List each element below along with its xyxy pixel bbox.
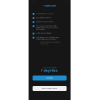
staticText: 9:41 [32,1,35,2]
staticText: New classes every week [36,21,54,23]
button[interactable]: Continue [33,75,67,80]
staticText: Continue [46,77,53,79]
staticText: PREMIUM [43,4,57,7]
staticText: Access to every course [36,13,54,14]
staticText: $6.99 USD per month [43,67,57,69]
button[interactable]: Restore purchase [33,86,67,91]
staticText: Personal coach feedback with detailed no… [36,25,59,30]
staticText: Auto-renews each month until you cancel [40,41,59,45]
staticText: 7 days free [41,69,58,72]
staticText: Certificates of completion [36,32,52,34]
staticText: Watch offline anywhere [36,17,52,19]
staticText: Cancel whenever you like, straight from … [36,36,59,40]
staticText: Restore purchase [42,88,57,89]
